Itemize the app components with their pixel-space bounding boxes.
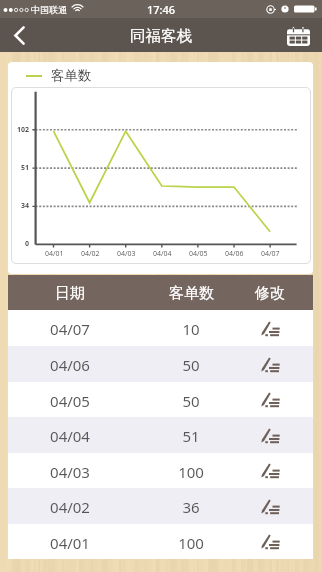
staticText: 100 — [178, 533, 204, 553]
staticText: 04/06 — [225, 249, 244, 259]
staticText: 04/06 — [50, 355, 90, 375]
staticText: 04/07 — [50, 319, 90, 339]
staticText: 04/05 — [50, 391, 90, 411]
button[interactable]: Edit — [248, 453, 292, 488]
staticText: 客单数 — [169, 284, 214, 303]
staticText: 04/04 — [50, 426, 90, 446]
staticText: 04/02 — [50, 497, 90, 517]
button[interactable]: Edit — [248, 382, 292, 417]
staticText: 0 — [25, 239, 30, 249]
staticText: 修改 — [255, 284, 285, 303]
button[interactable]: 04/06 — [8, 346, 313, 382]
staticText: 10 — [182, 319, 200, 339]
button[interactable]: Calendar — [274, 18, 322, 52]
staticText: 04/03 — [50, 462, 90, 482]
button[interactable]: Edit — [248, 346, 292, 382]
staticText: 51 — [21, 163, 30, 173]
staticText: 50 — [182, 391, 200, 411]
button[interactable]: Back — [0, 18, 38, 52]
button[interactable]: 04/07 — [8, 310, 313, 346]
staticText: 04/03 — [117, 249, 136, 259]
staticText: 102 — [17, 125, 30, 135]
staticText: 100 — [178, 462, 204, 482]
staticText: 04/01 — [50, 533, 90, 553]
button[interactable]: Edit — [248, 417, 292, 453]
staticText: 17:46 — [147, 2, 176, 17]
staticText: 04/02 — [81, 249, 100, 259]
staticText: 50 — [182, 355, 200, 375]
staticText: 04/07 — [261, 249, 280, 259]
button[interactable]: 04/01 — [8, 524, 313, 559]
button[interactable]: Edit — [248, 488, 292, 524]
staticText: 日期 — [55, 284, 85, 303]
button[interactable]: Edit — [248, 310, 292, 346]
staticText: 04/01 — [45, 249, 64, 259]
staticText: 36 — [182, 497, 200, 517]
staticText: 04/04 — [153, 249, 172, 259]
button[interactable]: Edit — [248, 524, 292, 559]
button[interactable]: 04/05 — [8, 382, 313, 417]
staticText: 04/05 — [189, 249, 208, 259]
button[interactable]: 04/04 — [8, 417, 313, 453]
staticText: 中国联通 — [31, 4, 67, 15]
button[interactable]: 04/02 — [8, 488, 313, 524]
button[interactable]: 04/03 — [8, 453, 313, 488]
staticText: 客单数 — [51, 67, 92, 84]
staticText: 34 — [21, 201, 30, 211]
staticText: 同福客栈 — [130, 26, 192, 46]
staticText: 51 — [182, 426, 200, 446]
